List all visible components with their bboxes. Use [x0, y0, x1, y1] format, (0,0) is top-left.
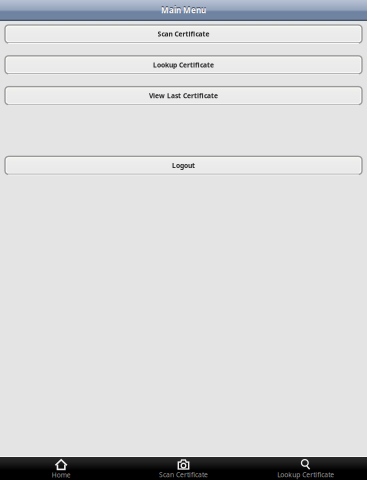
staticText: Lookup Certificate — [153, 60, 214, 69]
button[interactable]: Scan Certificate — [5, 25, 362, 44]
button[interactable]: View Last Certificate — [5, 87, 362, 106]
button[interactable]: Scan Certificate — [122, 456, 245, 480]
staticText: Scan Certificate — [159, 470, 208, 479]
staticText: Main Menu — [161, 3, 206, 14]
staticText: Lookup Certificate — [277, 470, 334, 479]
staticText: Main Menu — [161, 5, 206, 15]
button[interactable]: Lookup Certificate — [245, 456, 367, 480]
staticText: Logout — [172, 161, 195, 170]
button[interactable]: Home — [0, 456, 122, 480]
button[interactable]: Logout — [5, 156, 362, 175]
staticText: View Last Certificate — [149, 91, 218, 100]
button[interactable]: Lookup Certificate — [5, 56, 362, 75]
staticText: Scan Certificate — [157, 30, 209, 38]
staticText: Home — [52, 470, 71, 479]
